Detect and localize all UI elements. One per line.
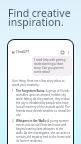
button[interactable]: More options	[66, 50, 70, 54]
button[interactable]: ChatGPT	[16, 50, 30, 54]
button[interactable]: I need help with getting started writing…	[32, 56, 72, 76]
staticText: I need help with getting started writing…	[34, 58, 70, 74]
staticText: Find creative inspiration.	[8, 6, 71, 30]
staticText: 2.	[12, 119, 16, 123]
button[interactable]: New chat	[60, 50, 64, 54]
button[interactable]: Menu	[12, 51, 15, 54]
staticText: Whispers in the Walls: A young woman mov…	[16, 119, 71, 143]
staticText: Sure thing. Here are a few story ideas t…	[12, 79, 71, 87]
staticText: The Forgotten Ruins: A group of friends …	[16, 89, 71, 117]
staticText: 1.	[12, 89, 16, 93]
